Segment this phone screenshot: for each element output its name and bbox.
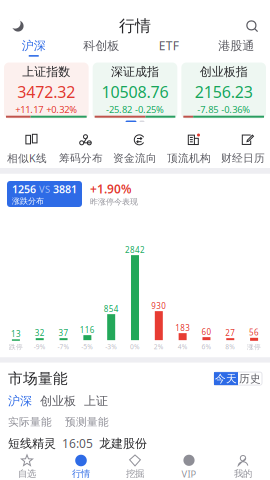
button[interactable]: 科创板 <box>67 38 135 60</box>
staticText: 自选 <box>18 468 36 479</box>
staticText: 上证 <box>84 394 108 408</box>
button[interactable]: 相似K线 <box>0 133 54 165</box>
staticText: 10508.76 <box>101 81 168 102</box>
button[interactable]: 行情 <box>54 451 108 480</box>
button[interactable]: 资金流向 <box>108 133 162 165</box>
button[interactable]: 创业板 <box>40 394 76 408</box>
button[interactable]: 挖掘 <box>108 451 162 480</box>
staticText: 涨停 <box>247 343 261 351</box>
button[interactable]: 筹码分布 <box>54 133 108 165</box>
button[interactable]: 上证 <box>84 394 108 408</box>
staticText: 沪深 <box>8 394 32 408</box>
staticText: 16:05 <box>62 435 93 451</box>
staticText: 跌停 <box>9 343 23 351</box>
staticText: 筹码分布 <box>59 151 103 165</box>
staticText: 6% <box>201 342 211 351</box>
staticText: -9% <box>34 342 46 351</box>
staticText: 3472.32 <box>17 81 75 102</box>
button[interactable]: ETF <box>135 38 202 60</box>
button[interactable]: 自选 <box>0 451 54 480</box>
staticText: 昨涨停今表现 <box>90 197 138 207</box>
staticText: 挖掘 <box>126 468 144 479</box>
staticText: -5% <box>81 342 93 351</box>
staticText: 创业板指 <box>200 64 248 79</box>
button[interactable]: VIP <box>162 451 216 480</box>
staticText: 短线精灵 <box>8 436 56 451</box>
staticText: 今天 <box>215 372 237 385</box>
button[interactable]: 顶流机构 <box>162 133 216 165</box>
staticText: +11.17 <box>15 103 43 116</box>
staticText: 龙建股份 <box>99 436 147 451</box>
button[interactable]: 沪深 <box>0 38 67 60</box>
staticText: 8% <box>225 342 235 351</box>
staticText: -0.36% <box>221 103 250 116</box>
staticText: 预测量能 <box>65 415 109 428</box>
button[interactable]: 沪深 <box>8 394 32 408</box>
staticText: 财经日历 <box>221 151 265 165</box>
staticText: 1256 <box>12 182 36 196</box>
button[interactable]: 夜间模式 <box>0 13 36 39</box>
staticText: 183 <box>175 322 190 333</box>
staticText: 0% <box>130 342 140 351</box>
button[interactable]: 深证成指 <box>93 62 177 118</box>
staticText: 港股通 <box>218 38 254 53</box>
staticText: VIP <box>181 468 196 480</box>
staticText: -3% <box>105 342 117 351</box>
staticText: 市场量能 <box>8 370 68 388</box>
staticText: -7% <box>57 342 69 351</box>
staticText: 13 <box>11 329 21 339</box>
staticText: 深证成指 <box>111 64 159 79</box>
staticText: 930 <box>151 300 166 311</box>
staticText: 2156.23 <box>195 81 253 102</box>
staticText: 上证指数 <box>22 64 70 79</box>
staticText: 资金流向 <box>113 151 157 165</box>
button[interactable]: 今天 <box>214 372 238 385</box>
button[interactable]: 我的 <box>216 451 270 480</box>
staticText: 3881 <box>53 182 77 196</box>
button[interactable]: 财经日历 <box>216 133 270 165</box>
staticText: 56 <box>249 327 259 338</box>
staticText: 我的 <box>234 468 252 479</box>
button[interactable]: 1256 <box>7 181 82 207</box>
staticText: VS <box>39 183 50 195</box>
staticText: 顶流机构 <box>167 151 211 165</box>
staticText: 科创板 <box>83 38 119 53</box>
button[interactable]: 搜索 <box>234 13 270 39</box>
staticText: -0.25% <box>135 103 164 116</box>
staticText: 37 <box>58 327 68 338</box>
staticText: 116 <box>80 324 95 335</box>
staticText: 行情 <box>119 16 151 36</box>
staticText: ETF <box>159 38 179 54</box>
staticText: 历史 <box>239 372 261 385</box>
staticText: 854 <box>104 303 119 314</box>
button[interactable]: 港股通 <box>202 38 270 60</box>
staticText: 涨跌分布 <box>12 196 44 206</box>
staticText: 实际量能 <box>8 415 52 428</box>
staticText: 创业板 <box>40 394 76 408</box>
staticText: -7.85 <box>197 103 218 116</box>
staticText: 2842 <box>125 244 145 255</box>
staticText: +0.32% <box>46 103 77 116</box>
staticText: 行情 <box>72 468 90 479</box>
staticText: 27 <box>225 327 235 338</box>
staticText: -25.82 <box>106 103 132 116</box>
staticText: 60 <box>201 326 211 337</box>
staticText: +1.90% <box>90 181 132 197</box>
staticText: 2% <box>154 342 164 351</box>
staticText: 32 <box>35 327 45 338</box>
button[interactable]: 历史 <box>238 372 262 385</box>
staticText: 相似K线 <box>7 151 47 165</box>
button[interactable]: 创业板指 <box>181 62 266 118</box>
staticText: 沪深 <box>22 38 46 53</box>
button[interactable]: 上证指数 <box>4 62 89 118</box>
staticText: 4% <box>178 342 188 351</box>
